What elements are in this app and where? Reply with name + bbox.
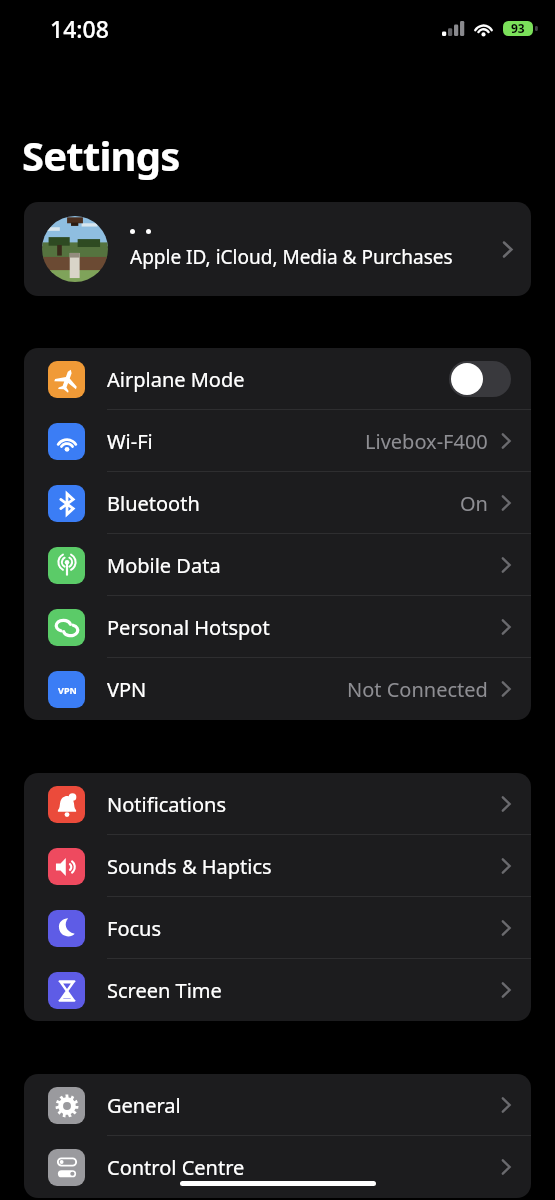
staticText: Bluetooth [107, 490, 200, 517]
staticText: Apple ID, iCloud, Media & Purchases [130, 244, 453, 270]
staticText: On [460, 490, 488, 517]
staticText: 14:08 [50, 13, 109, 44]
staticText: Sounds & Haptics [107, 853, 272, 880]
staticText: Wi-Fi [107, 428, 153, 455]
staticText: Not Connected [347, 676, 488, 703]
button[interactable]: Notifications [24, 773, 531, 835]
staticText: VPN [107, 676, 147, 703]
button[interactable]: Focus [24, 897, 531, 959]
button[interactable]: Bluetooth [24, 472, 531, 534]
staticText: Control Centre [107, 1154, 245, 1181]
button[interactable]: Airplane Mode toggle, off [449, 361, 511, 397]
staticText: VPN [58, 684, 77, 696]
button[interactable]: Mobile Data [24, 534, 531, 596]
button[interactable]: Screen Time [24, 959, 531, 1021]
staticText: Livebox-F400 [365, 428, 488, 455]
staticText: Mobile Data [107, 552, 221, 579]
staticText: 93 [511, 20, 525, 36]
button[interactable]: Apple ID, iCloud, Media & Purchases [24, 202, 531, 296]
button[interactable]: Sounds & Haptics [24, 835, 531, 897]
button[interactable]: Personal Hotspot [24, 596, 531, 658]
staticText: Notifications [107, 791, 226, 818]
staticText: General [107, 1092, 181, 1119]
staticText: Screen Time [107, 977, 222, 1004]
staticText: Airplane Mode [107, 366, 245, 393]
staticText: Personal Hotspot [107, 614, 270, 641]
button[interactable]: Wi-Fi [24, 410, 531, 472]
button[interactable]: Airplane Mode [24, 348, 531, 410]
button[interactable]: Control Centre [24, 1136, 531, 1198]
staticText: Settings [22, 128, 180, 182]
button[interactable]: General [24, 1074, 531, 1136]
staticText: Focus [107, 915, 162, 942]
button[interactable]: VPN [24, 658, 531, 720]
